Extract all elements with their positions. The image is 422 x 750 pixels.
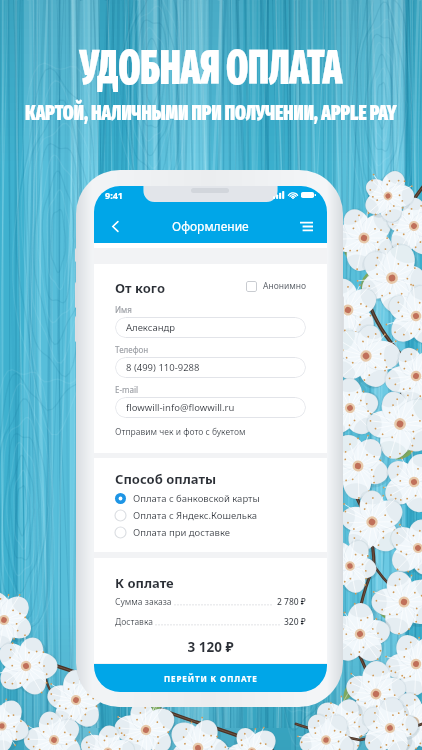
staticText: Оплата с банковской карты [133, 492, 260, 505]
button[interactable]: Back [102, 213, 128, 239]
staticText: От кого [115, 279, 165, 293]
button[interactable]: flowwill-info@flowwill.ru [115, 397, 306, 418]
staticText: Доставка [115, 616, 153, 628]
button[interactable]: Оплата с Яндекс.Кошелька [115, 507, 306, 524]
staticText: 3 120 ₽ [115, 638, 306, 656]
staticText: Отправим чек и фото с букетом [115, 426, 246, 438]
staticText: ПЕРЕЙТИ К ОПЛАТЕ [164, 673, 258, 684]
staticText: Александр [126, 321, 176, 334]
button[interactable]: Оплата с банковской карты [115, 490, 306, 507]
staticText: УДОБНАЯ ОПЛАТА [79, 38, 343, 97]
button[interactable]: Оплата при доставке [115, 524, 306, 541]
staticText: Оплата с Яндекс.Кошелька [133, 509, 258, 522]
staticText: Оплата при доставке [133, 526, 231, 539]
staticText: 320 ₽ [284, 616, 306, 628]
staticText: Способ оплаты [115, 470, 217, 484]
staticText: E-mail [115, 384, 139, 395]
staticText: 9:41 [105, 189, 123, 201]
staticText: 2 780 ₽ [277, 596, 306, 608]
button[interactable]: Анонимно [246, 280, 306, 292]
staticText: КАРТОЙ, НАЛИЧНЫМИ ПРИ ПОЛУЧЕНИИ, APPLE P… [25, 100, 397, 125]
staticText: Анонимно [263, 280, 306, 292]
button[interactable]: 8 (499) 110-9288 [115, 357, 306, 378]
button[interactable]: Menu [293, 213, 319, 239]
staticText: К оплате [115, 574, 174, 588]
staticText: Телефон [115, 344, 149, 355]
button[interactable]: ПЕРЕЙТИ К ОПЛАТЕ [94, 664, 327, 692]
staticText: Имя [115, 304, 132, 315]
staticText: flowwill-info@flowwill.ru [126, 401, 235, 414]
staticText: Оформление [172, 218, 249, 234]
button[interactable]: Александр [115, 317, 306, 338]
staticText: Сумма заказа [115, 596, 172, 608]
staticText: 8 (499) 110-9288 [126, 361, 200, 374]
